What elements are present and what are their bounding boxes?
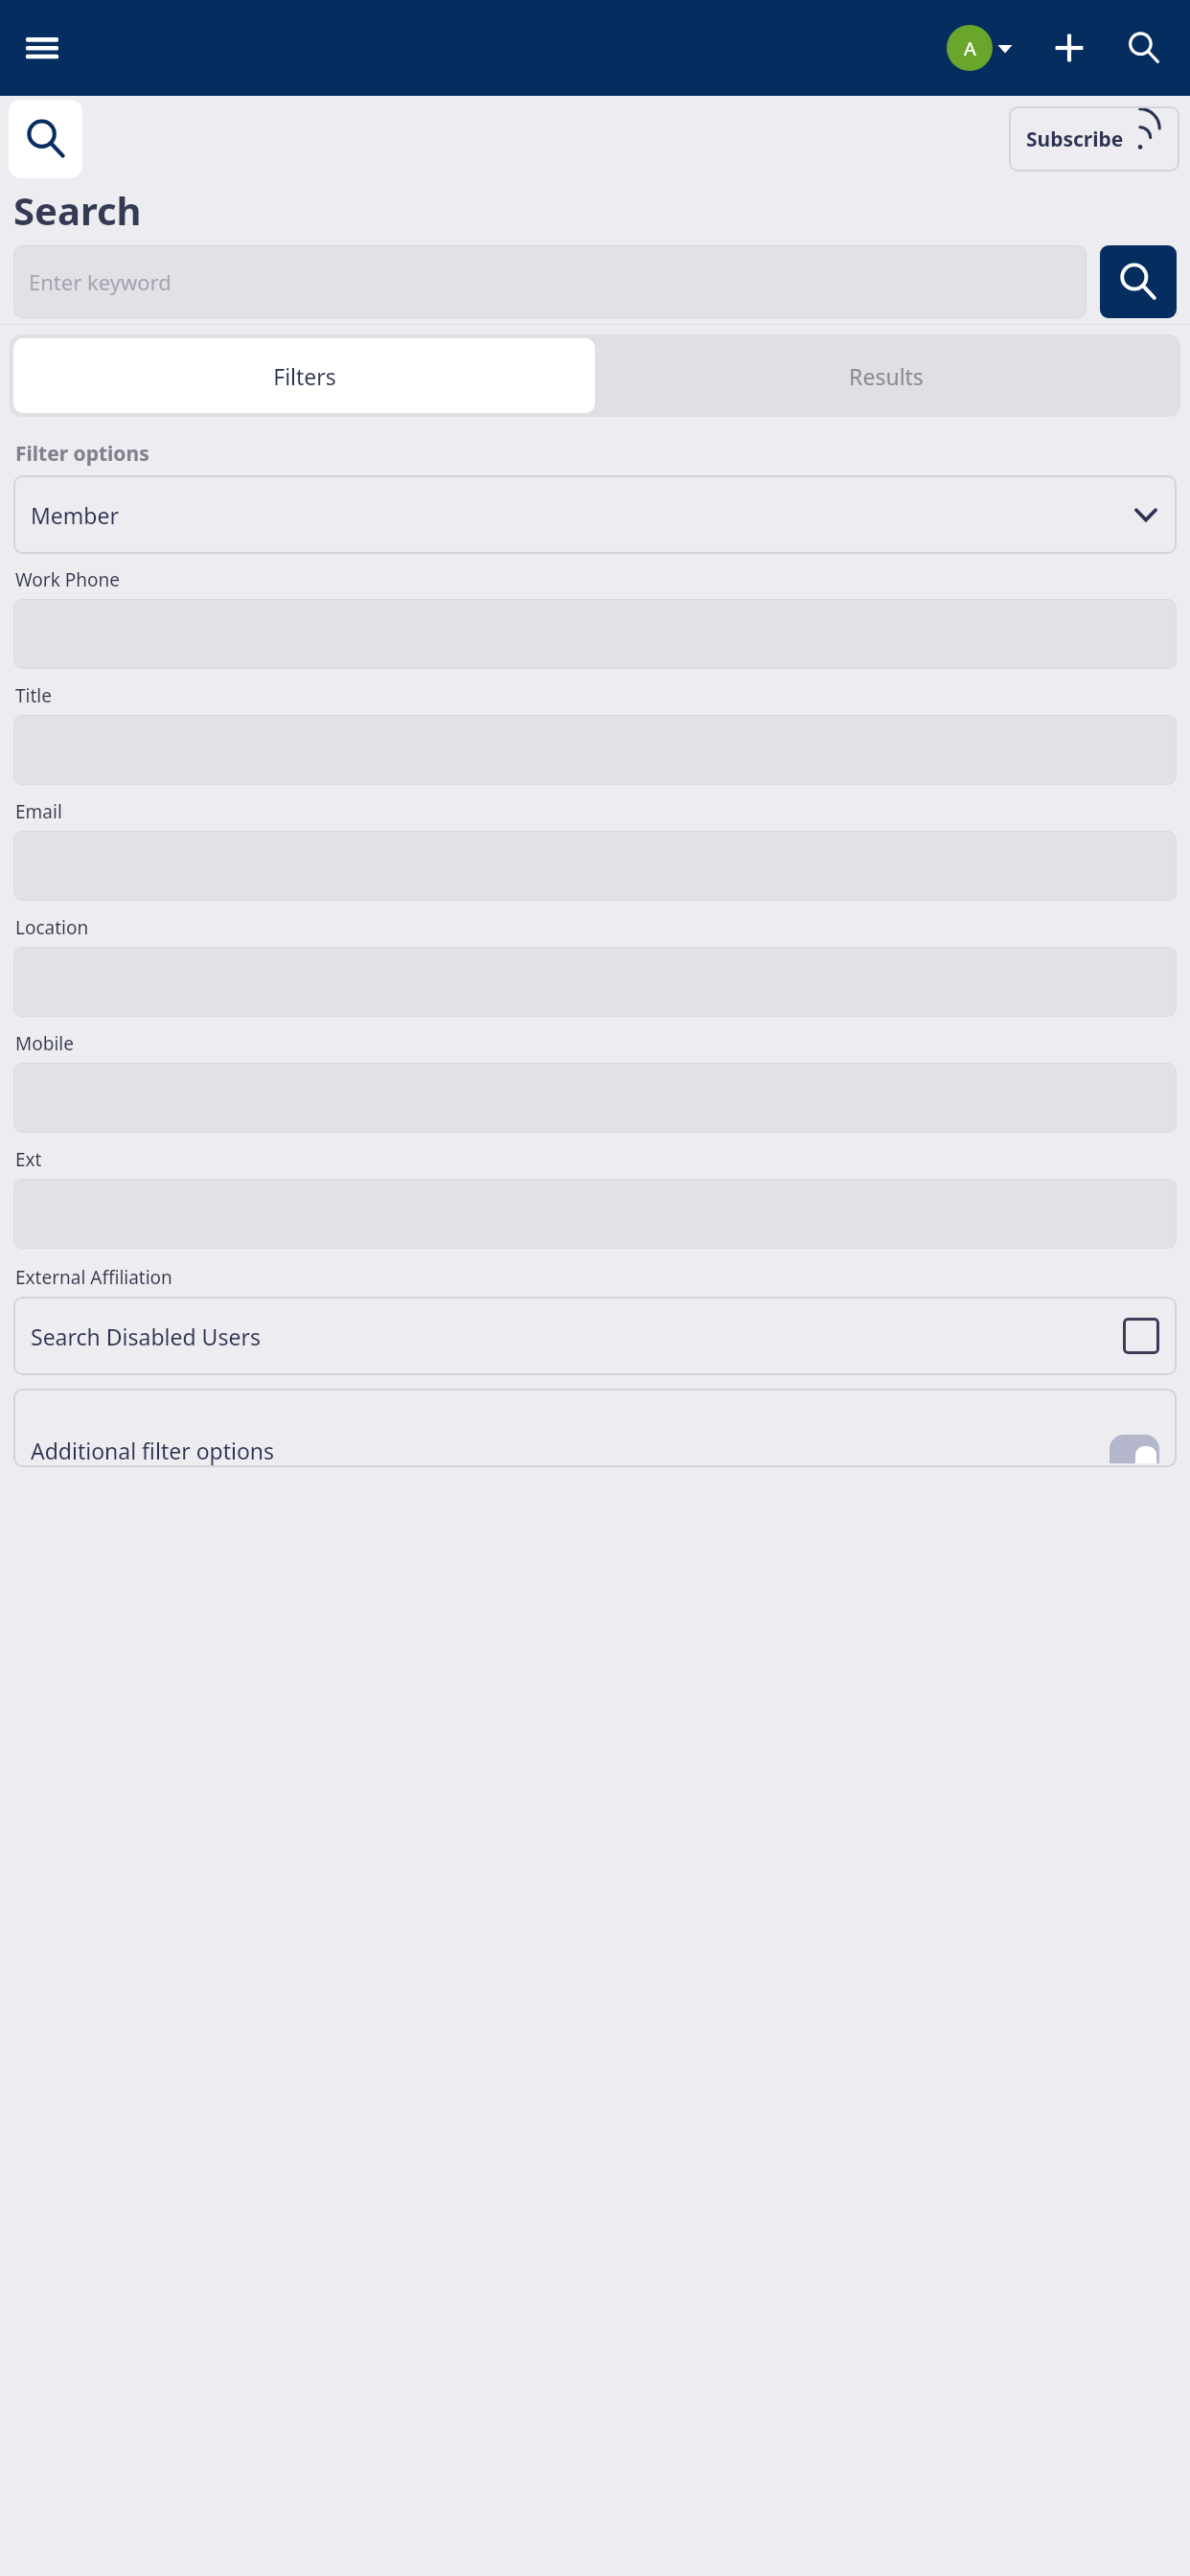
staticText: Subscribe (1026, 126, 1124, 153)
button[interactable]: Enter keyword (13, 245, 1087, 318)
staticText: Work Phone (15, 567, 120, 592)
button[interactable]: Filters (13, 338, 595, 413)
staticText: Filters (273, 361, 336, 391)
staticText: Search (13, 184, 142, 236)
staticText: Results (849, 361, 924, 391)
button[interactable]: Subscribe (1009, 106, 1179, 172)
staticText: A (964, 35, 976, 61)
button[interactable]: Member (13, 475, 1177, 554)
staticText: Ext (15, 1147, 42, 1172)
button[interactable]: Search (1100, 245, 1177, 318)
staticText: Location (15, 915, 89, 940)
staticText: Mobile (15, 1031, 74, 1056)
staticText: Member (31, 500, 1133, 530)
staticText: Filter options (15, 440, 149, 468)
staticText: External Affiliation (15, 1265, 172, 1290)
staticText: Enter keyword (29, 267, 172, 296)
staticText: Additional filter options (31, 1436, 275, 1465)
button[interactable]: Search (1117, 21, 1171, 75)
staticText: Title (15, 683, 52, 708)
button[interactable]: Additional filter options (13, 1389, 1177, 1467)
button[interactable]: Account (943, 19, 1018, 77)
button[interactable]: Search Disabled Users (13, 1297, 1177, 1375)
staticText: Email (15, 799, 62, 824)
button[interactable]: Menu (13, 19, 71, 77)
button[interactable]: Add (1042, 21, 1096, 75)
button[interactable]: Results (595, 338, 1177, 413)
button[interactable]: Search (9, 100, 82, 178)
staticText: Search Disabled Users (31, 1322, 1123, 1351)
